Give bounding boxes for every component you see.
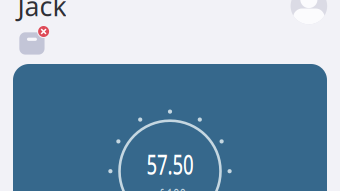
button[interactable]: Profile <box>291 0 327 24</box>
staticText: 57.50 <box>136 147 203 182</box>
button[interactable]: Card unavailable <box>16 25 48 56</box>
staticText: of 100 <box>145 184 192 191</box>
staticText: Jack <box>17 0 66 23</box>
